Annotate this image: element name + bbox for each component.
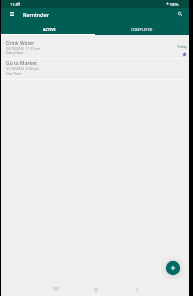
button[interactable]: Recent apps bbox=[49, 282, 63, 296]
button[interactable]: Menu bbox=[6, 8, 17, 19]
button[interactable]: COMPLETED bbox=[95, 22, 189, 35]
staticText: Reminder bbox=[23, 11, 50, 19]
button[interactable]: Home bbox=[89, 283, 103, 296]
staticText: Today bbox=[177, 44, 187, 49]
staticText: 31/10/2020 5:30 pm bbox=[6, 66, 39, 71]
staticText: Every Hour bbox=[6, 50, 24, 55]
staticText: Go to Market bbox=[6, 60, 37, 67]
staticText: Drink Water bbox=[6, 40, 35, 47]
button[interactable]: Favourite bbox=[180, 50, 188, 58]
staticText: ACTIVE bbox=[43, 27, 56, 32]
staticText: 11:39 bbox=[10, 2, 20, 7]
button[interactable]: Back bbox=[130, 283, 144, 296]
staticText: 24/10/2020 11:15 am bbox=[6, 46, 41, 51]
button[interactable]: Drink Water bbox=[1, 35, 189, 58]
button[interactable]: ACTIVE bbox=[1, 22, 95, 35]
button[interactable]: Go to Market bbox=[1, 59, 189, 79]
button[interactable]: Search bbox=[174, 8, 185, 19]
staticText: 100% bbox=[169, 2, 179, 7]
staticText: One Time bbox=[6, 71, 22, 76]
staticText: COMPLETED bbox=[131, 27, 153, 32]
button[interactable]: Add reminder bbox=[162, 257, 184, 279]
